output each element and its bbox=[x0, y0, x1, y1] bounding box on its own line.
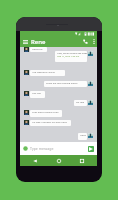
button[interactable]: Back bbox=[26, 155, 44, 166]
staticText: When are they playing there? bbox=[46, 82, 78, 85]
staticText: Last day bbox=[32, 92, 41, 95]
staticText: They aren't playing Then bbox=[32, 111, 59, 114]
staticText: Aug 11, 2015 1:45 PM bbox=[57, 55, 80, 58]
staticText: No idea. Probably too easy haha bbox=[32, 121, 67, 124]
staticText: Type message bbox=[30, 146, 54, 151]
button[interactable]: Send bbox=[88, 146, 94, 152]
staticText: Haha yup bbox=[32, 48, 43, 51]
button[interactable]: Yup. Beautiful course bbox=[30, 70, 65, 76]
staticText: Oh tera bbox=[76, 101, 85, 104]
button[interactable]: Menu bbox=[20, 36, 31, 47]
button[interactable]: No idea. Probably too easy haha bbox=[30, 120, 71, 126]
button[interactable]: Recents bbox=[73, 155, 91, 166]
button[interactable]: Call bbox=[80, 36, 90, 47]
button[interactable]: Home bbox=[50, 155, 68, 166]
button[interactable]: Haha yup bbox=[30, 47, 47, 52]
button[interactable]: They aren't playing Then bbox=[30, 110, 62, 117]
button[interactable]: Last day bbox=[30, 91, 45, 98]
staticText: Now, great looking tee pads bbox=[57, 52, 87, 55]
button[interactable]: Now, great looking tee pads bbox=[55, 51, 87, 62]
staticText: Haha bbox=[80, 134, 86, 137]
button[interactable]: When are they playing there? bbox=[44, 81, 87, 87]
button[interactable]: Haha bbox=[78, 133, 87, 140]
staticText: Yup. Beautiful course bbox=[32, 71, 55, 74]
button[interactable]: More options bbox=[90, 36, 97, 47]
button[interactable]: Oh tera bbox=[74, 100, 87, 106]
staticText: Rene bbox=[31, 38, 46, 46]
